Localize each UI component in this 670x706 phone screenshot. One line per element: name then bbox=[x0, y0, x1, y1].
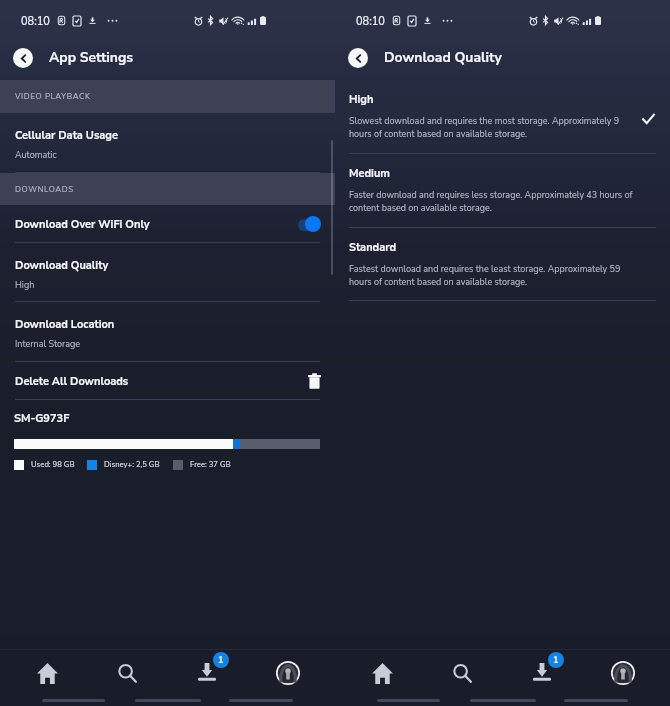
button[interactable]: High bbox=[335, 80, 670, 154]
staticText: 1 bbox=[218, 654, 224, 666]
button[interactable]: Standard bbox=[335, 228, 670, 301]
staticText: 1 bbox=[553, 654, 559, 666]
staticText: Slowest download and requires the most s… bbox=[349, 115, 633, 140]
staticText: Used: 98 GB bbox=[31, 459, 75, 470]
staticText: Free: 37 GB bbox=[190, 459, 231, 470]
staticText: VIDEO PLAYBACK bbox=[15, 91, 91, 102]
staticText: Cellular Data Usage bbox=[15, 128, 118, 143]
button[interactable]: Profile bbox=[264, 650, 312, 696]
staticText: Download Quality bbox=[15, 258, 109, 273]
button[interactable]: Download Over WiFi Only bbox=[0, 205, 335, 243]
staticText: Automatic bbox=[15, 149, 57, 161]
staticText: Faster download and requires less storag… bbox=[349, 189, 633, 214]
button[interactable]: Profile bbox=[599, 650, 647, 696]
staticText: 08:10 bbox=[21, 14, 50, 29]
button[interactable]: Download Location bbox=[0, 302, 335, 362]
button[interactable]: Delete All Downloads bbox=[0, 362, 335, 400]
staticText: Disney+: 2,5 GB bbox=[104, 459, 160, 470]
staticText: Download Location bbox=[15, 317, 115, 332]
staticText: DOWNLOADS bbox=[15, 184, 74, 195]
button[interactable]: Downloads bbox=[518, 650, 566, 696]
staticText: Download Over WiFi Only bbox=[15, 217, 150, 232]
staticText: Standard bbox=[349, 240, 397, 255]
button[interactable]: Home bbox=[23, 650, 71, 696]
staticText: High bbox=[15, 279, 35, 291]
button[interactable]: Search bbox=[438, 650, 486, 696]
staticText: Fastest download and requires the least … bbox=[349, 263, 633, 288]
staticText: Download Quality bbox=[384, 48, 502, 67]
staticText: App Settings bbox=[49, 48, 134, 67]
button[interactable]: Home bbox=[358, 650, 406, 696]
button[interactable]: Search bbox=[103, 650, 151, 696]
staticText: SM-G973F bbox=[14, 411, 70, 426]
button[interactable]: Back bbox=[348, 48, 368, 68]
button[interactable]: Cellular Data Usage bbox=[0, 113, 335, 173]
other: Delete all downloads bbox=[308, 372, 321, 390]
staticText: Delete All Downloads bbox=[15, 374, 129, 389]
staticText: Medium bbox=[349, 166, 390, 181]
staticText: Internal Storage bbox=[15, 338, 81, 350]
button[interactable]: Download Quality bbox=[0, 243, 335, 302]
button[interactable]: Medium bbox=[335, 154, 670, 228]
staticText: 08:10 bbox=[356, 14, 385, 29]
staticText: High bbox=[349, 92, 374, 107]
button[interactable]: Downloads bbox=[183, 650, 231, 696]
button[interactable]: Back bbox=[13, 48, 33, 68]
